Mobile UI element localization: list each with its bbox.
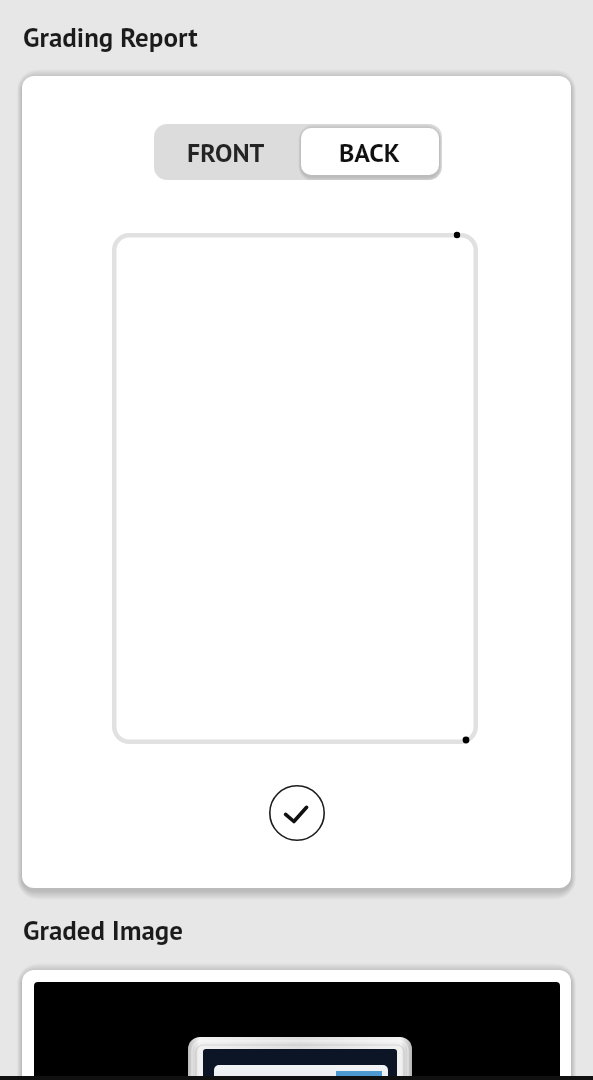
- staticText: Graded Image: [23, 913, 183, 948]
- staticText: FRONT: [187, 136, 265, 170]
- button[interactable]: BACK: [301, 128, 439, 175]
- staticText: Grading Report: [23, 20, 198, 55]
- button[interactable]: FRONT: [154, 124, 297, 180]
- button[interactable]: Confirm: [269, 785, 325, 841]
- staticText: BACK: [339, 136, 400, 170]
